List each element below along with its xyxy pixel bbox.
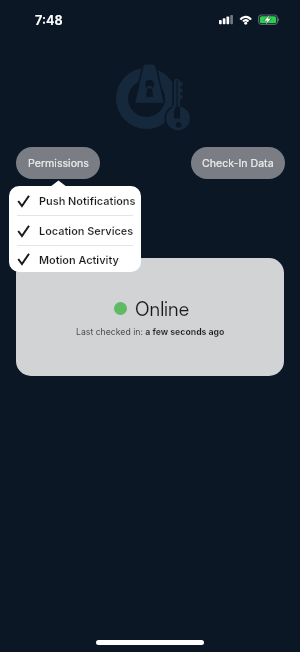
staticText: Check-In Data [202,157,274,170]
button[interactable]: Online [16,258,284,376]
button[interactable]: Motion Activity [9,246,141,272]
staticText: Push Notifications [39,194,136,207]
staticText: Location Services [39,224,134,237]
staticText: Last checked in: a few seconds ago [76,327,225,338]
button[interactable]: Check-In Data [191,147,285,179]
button[interactable]: Push Notifications [9,186,141,215]
button[interactable]: Permissions [16,147,100,179]
staticText: Motion Activity [39,253,119,266]
button[interactable]: Location Services [9,216,141,245]
staticText: Permissions [28,157,89,170]
staticText: Online [135,297,190,320]
staticText: 7:48 [35,13,63,28]
